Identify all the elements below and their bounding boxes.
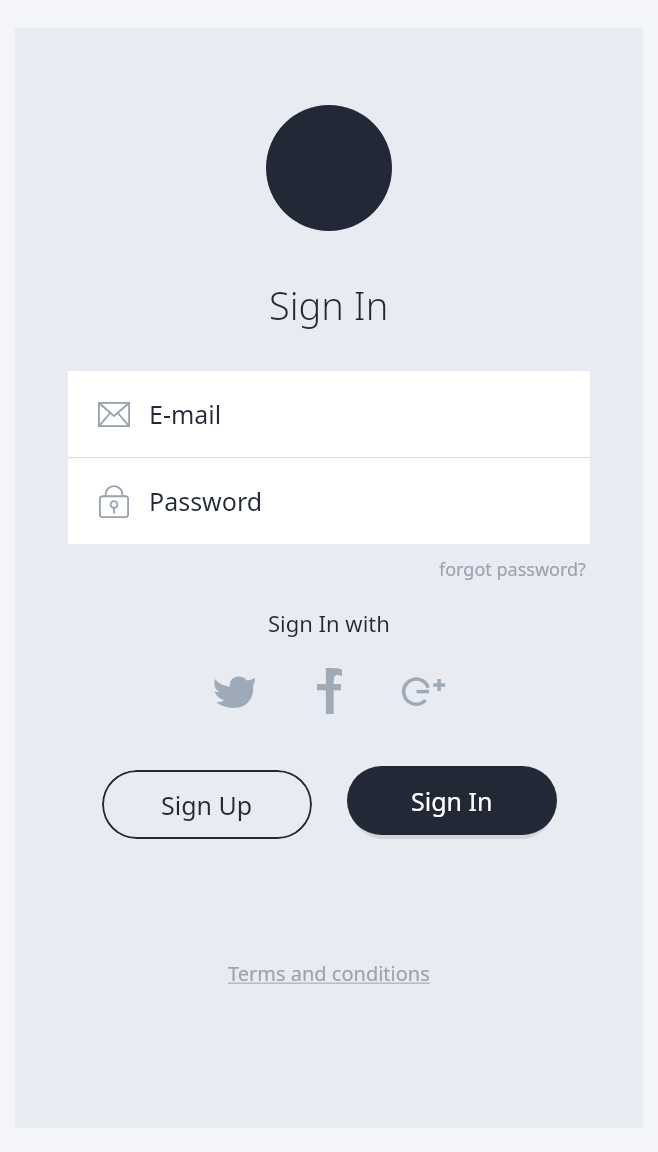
staticText: Sign Up	[161, 788, 253, 822]
button[interactable]: Sign in with Google	[393, 660, 455, 722]
staticText: Password	[149, 484, 263, 518]
button[interactable]: Sign in with Twitter	[203, 660, 265, 722]
staticText: Sign In	[269, 279, 389, 331]
button[interactable]: E-mail	[68, 371, 590, 457]
staticText: Sign In with	[268, 608, 390, 638]
staticText: E-mail	[149, 397, 222, 431]
button[interactable]: Password	[68, 458, 590, 544]
button[interactable]: Sign Up	[102, 770, 312, 839]
button[interactable]: Sign In	[347, 766, 557, 835]
button[interactable]: Sign in with Facebook	[298, 660, 360, 722]
button[interactable]: Terms and conditions	[220, 952, 438, 995]
button[interactable]: forgot password?	[435, 553, 590, 586]
staticText: Terms and conditions	[228, 960, 430, 987]
staticText: Sign In	[411, 784, 493, 818]
staticText: forgot password?	[439, 557, 586, 582]
